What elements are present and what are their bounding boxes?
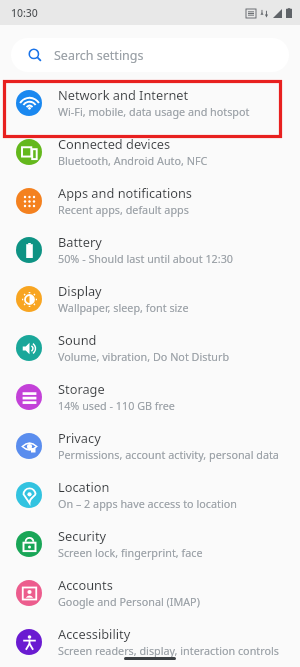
staticText: Security <box>58 527 107 544</box>
staticText: Network and Internet <box>58 86 189 103</box>
staticText: Sound <box>58 331 97 348</box>
staticText: 10:30 <box>11 6 38 20</box>
button[interactable]: Security <box>0 519 300 568</box>
staticText: Volume, vibration, Do Not Disturb <box>58 349 230 364</box>
staticText: Accounts <box>58 576 113 593</box>
button[interactable]: Accounts <box>0 568 300 617</box>
button[interactable]: Sound <box>0 323 300 372</box>
staticText: Screen lock, fingerprint, face <box>58 545 203 560</box>
button[interactable]: Privacy <box>0 421 300 470</box>
staticText: Location <box>58 478 110 495</box>
button[interactable]: Storage <box>0 372 300 421</box>
staticText: Apps and notifications <box>58 184 192 201</box>
staticText: Screen readers, display, interaction con… <box>58 643 279 658</box>
button[interactable]: Search settings <box>11 38 289 72</box>
staticText: Permissions, account activity, personal … <box>58 447 279 462</box>
staticText: Connected devices <box>58 135 171 152</box>
staticText: Battery <box>58 233 102 250</box>
staticText: Bluetooth, Android Auto, NFC <box>58 153 208 168</box>
button[interactable]: Network and Internet <box>0 78 300 127</box>
button[interactable]: Location <box>0 470 300 519</box>
staticText: 14% used - 110 GB free <box>58 398 175 413</box>
staticText: Wallpaper, sleep, font size <box>58 300 189 315</box>
staticText: Accessibility <box>58 625 131 642</box>
button[interactable]: Apps and notifications <box>0 176 300 225</box>
staticText: Google and Personal (IMAP) <box>58 594 200 609</box>
staticText: Privacy <box>58 429 101 446</box>
button[interactable]: Display <box>0 274 300 323</box>
staticText: Display <box>58 282 102 299</box>
button[interactable]: Accessibility <box>0 617 300 666</box>
staticText: 50% - Should last until about 12:30 <box>58 251 233 266</box>
button[interactable]: Connected devices <box>0 127 300 176</box>
staticText: On – 2 apps have access to location <box>58 496 237 511</box>
staticText: Storage <box>58 380 105 397</box>
staticText: Recent apps, default apps <box>58 202 189 217</box>
staticText: Search settings <box>54 47 144 64</box>
staticText: Wi-Fi, mobile, data usage and hotspot <box>58 104 250 119</box>
button[interactable]: Battery <box>0 225 300 274</box>
